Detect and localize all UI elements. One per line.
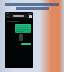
button[interactable] bbox=[15, 24, 31, 33]
button[interactable] bbox=[13, 15, 24, 17]
button[interactable]: More options bbox=[29, 15, 32, 18]
button[interactable] bbox=[19, 34, 23, 41]
button[interactable] bbox=[21, 43, 31, 45]
button[interactable]: Back bbox=[6, 15, 9, 18]
button[interactable] bbox=[5, 3, 59, 6]
